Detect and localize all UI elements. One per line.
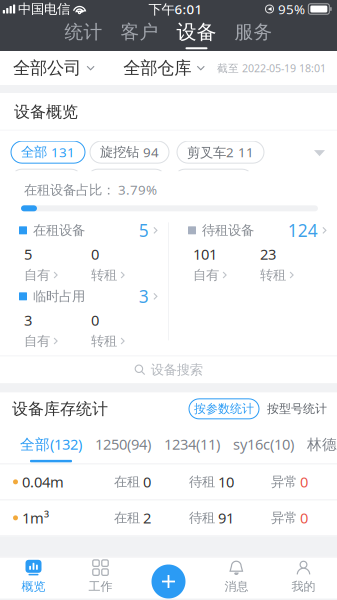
button[interactable]: 工作 [67,557,134,598]
button[interactable]: 新建 [148,561,188,600]
staticText: 0.04m [22,472,64,492]
staticText: 在租设备占比： 3.79% [24,181,157,198]
button[interactable]: 3 [24,310,91,349]
button[interactable]: 全部公司 [13,51,95,85]
staticText: 转租 [91,267,117,283]
button[interactable]: 5 [24,244,91,283]
staticText: 91 [218,508,234,528]
button[interactable]: 挖掘机 [87,169,166,191]
button[interactable]: 概览 [0,557,67,598]
button[interactable]: 1234(11) [164,425,233,463]
staticText: 124 [288,219,318,242]
staticText: 待租设备 [202,222,254,239]
staticText: 转租 [260,267,286,283]
staticText: 全部仓库 [123,57,191,79]
button[interactable]: 0 [91,310,153,349]
button[interactable]: 全部 [11,141,85,163]
button[interactable]: 待租设备 [188,222,327,238]
staticText: 异常 [271,510,297,526]
staticText: 服务 [234,20,272,43]
staticText: 1234(11) [164,434,220,454]
staticText: 林德211( [307,434,337,454]
staticText: 转租 [91,333,117,349]
staticText: 设备库存统计 [12,399,108,419]
button[interactable]: 1m³ [0,500,337,535]
button[interactable]: 1250(94) [95,425,164,463]
button[interactable]: 我的 [270,557,337,598]
staticText: 在租 [114,474,140,490]
button[interactable]: 统计 [64,18,102,51]
staticText: 剪叉车2 [187,143,234,161]
button[interactable]: 临时占用 [19,288,158,304]
staticText: 统计 [64,20,102,43]
staticText: 我的 [291,579,315,594]
button[interactable]: 平板车6 [174,169,253,191]
staticText: 5 [24,244,32,264]
staticText: 消息 [224,579,248,594]
staticText: 自有 [24,267,50,283]
staticText: 自有 [193,267,219,283]
staticText: 95% [278,0,305,18]
staticText: 12 [140,171,156,189]
staticText: 装载机 [21,172,60,188]
staticText: 8 [64,171,72,189]
staticText: 异常 [271,474,297,490]
staticText: 设备搜索 [151,362,203,378]
staticText: 按型号统计 [267,401,327,416]
staticText: sy16c(10) [233,434,294,454]
staticText: 设备概览 [14,102,78,122]
button[interactable]: 在租设备 [19,222,158,238]
staticText: 待租 [189,510,215,526]
staticText: 截至 2022-05-19 18:01 [217,61,326,75]
staticText: 11 [238,143,254,161]
button[interactable]: 按参数统计 [189,399,259,419]
staticText: 自有 [24,333,50,349]
staticText: 临时占用 [33,288,85,305]
button[interactable]: 服务 [234,18,272,51]
button[interactable]: 客户 [120,18,158,51]
button[interactable]: 101 [193,244,260,283]
staticText: 0 [91,244,99,264]
staticText: 94 [143,143,159,161]
button[interactable]: 23 [260,244,322,283]
button[interactable]: 按型号统计 [265,399,329,419]
staticText: 概览 [21,579,45,594]
staticText: 3 [24,310,32,330]
staticText: 按参数统计 [194,401,254,416]
staticText: 0 [143,472,151,492]
staticText: 在租 [114,510,140,526]
staticText: 2 [143,508,151,528]
button[interactable]: 剪叉车2 [177,141,264,163]
staticText: 1m³ [22,508,49,528]
button[interactable]: 全部仓库 [123,51,205,85]
staticText: 3 [139,285,149,308]
staticText: 101 [193,244,217,264]
button[interactable]: 全部(132) [20,425,95,463]
button[interactable]: sy16c(10) [233,425,307,463]
staticText: 设备 [176,20,216,44]
staticText: 0 [91,310,99,330]
staticText: 5 [139,219,149,242]
staticText: 待租 [189,474,215,490]
button[interactable]: 0 [91,244,153,283]
button[interactable]: 林德211( [307,425,337,463]
staticText: 10 [218,472,234,492]
staticText: 0 [300,472,308,492]
staticText: 挖掘机 [97,172,136,188]
staticText: 客户 [120,20,158,43]
button[interactable]: 设备搜索 [0,356,337,383]
button[interactable]: 0.04m [0,464,337,499]
staticText: 全部 [21,144,47,160]
button[interactable]: 消息 [203,557,270,598]
staticText: 工作 [88,579,112,594]
staticText: 在租设备 [33,222,85,239]
button[interactable]: 旋挖钻 [90,141,169,163]
button[interactable]: 装载机 [11,169,82,191]
staticText: 1250(94) [95,434,151,454]
button[interactable]: 设备 [176,18,216,51]
staticText: 下午6:01 [148,0,202,18]
staticText: 全部公司 [13,57,81,79]
staticText: 0 [300,508,308,528]
